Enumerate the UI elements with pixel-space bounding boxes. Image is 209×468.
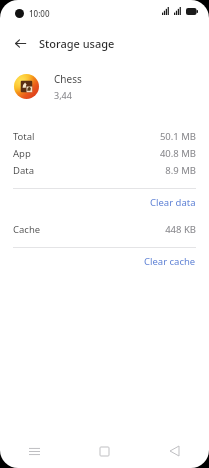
staticText: Clear data — [150, 196, 196, 209]
button[interactable]: Total — [0, 128, 209, 145]
staticText: Cache — [13, 223, 41, 236]
staticText: Total — [13, 130, 35, 143]
button[interactable]: Home — [69, 434, 139, 468]
staticText: 3,44 — [54, 89, 72, 101]
button[interactable]: Chess — [0, 66, 209, 106]
staticText: 8.9 MB — [165, 164, 196, 177]
staticText: 40.8 MB — [159, 147, 196, 160]
staticText: Chess — [54, 72, 82, 86]
button[interactable]: Back — [9, 32, 31, 54]
staticText: 50.1 MB — [159, 130, 196, 143]
button[interactable]: Cache — [0, 221, 209, 238]
staticText: Storage usage — [39, 36, 115, 51]
button[interactable]: App — [0, 145, 209, 162]
button[interactable]: Clear data — [0, 189, 209, 215]
staticText: App — [13, 147, 31, 160]
staticText: 10:00 — [29, 8, 50, 19]
staticText: 448 KB — [165, 223, 196, 236]
staticText: Data — [13, 164, 35, 177]
button[interactable]: Clear cache — [0, 248, 209, 274]
button[interactable]: Data — [0, 162, 209, 179]
staticText: Clear cache — [144, 255, 196, 268]
button[interactable]: Back — [139, 434, 209, 468]
button[interactable]: Recent apps — [0, 434, 69, 468]
